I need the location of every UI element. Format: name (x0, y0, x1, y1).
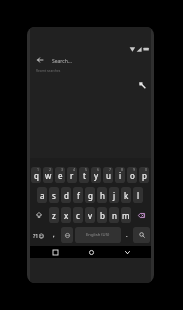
button[interactable]: . (123, 227, 131, 243)
staticText: j (113, 190, 116, 201)
button[interactable]: b (97, 207, 107, 223)
button[interactable]: z (49, 207, 59, 223)
button[interactable]: Hide keyboard (117, 246, 137, 258)
staticText: s (52, 190, 56, 201)
staticText: n (112, 210, 117, 221)
button[interactable]: Back (34, 54, 46, 66)
staticText: Search... (52, 58, 72, 65)
staticText: u (106, 170, 111, 181)
staticText: 8 (121, 167, 124, 172)
button[interactable]: Home (81, 246, 101, 258)
button[interactable]: k (121, 187, 131, 203)
staticText: a (40, 190, 45, 201)
staticText: h (100, 190, 105, 201)
staticText: p (142, 170, 147, 181)
staticText: 1 (37, 167, 40, 172)
staticText: v (88, 210, 93, 221)
button[interactable]: m (121, 207, 131, 223)
staticText: t (83, 170, 86, 181)
button[interactable]: t (79, 167, 89, 183)
staticText: 4 (73, 167, 76, 172)
button[interactable]: v (85, 207, 95, 223)
staticText: , (53, 231, 55, 239)
staticText: z (52, 210, 56, 221)
button[interactable]: English (US) (75, 227, 121, 243)
button[interactable]: q (31, 167, 41, 183)
button[interactable]: s (49, 187, 59, 203)
staticText: 5 (85, 167, 88, 172)
button[interactable]: Search (133, 227, 150, 243)
staticText: l (137, 190, 140, 201)
button[interactable]: x (61, 207, 71, 223)
button[interactable]: y (91, 167, 101, 183)
button[interactable]: Backspace (133, 207, 149, 223)
staticText: c (76, 210, 80, 221)
button[interactable]: Recent apps (45, 246, 65, 258)
staticText: 0 (145, 167, 148, 172)
staticText: m (122, 210, 130, 221)
button[interactable]: a (37, 187, 47, 203)
staticText: 9 (133, 167, 136, 172)
button[interactable]: g (85, 187, 95, 203)
staticText: r (70, 170, 74, 181)
staticText: i (119, 170, 122, 181)
button[interactable]: o (127, 167, 137, 183)
staticText: . (126, 231, 128, 239)
button[interactable]: ?1☺ (31, 227, 47, 243)
button[interactable]: Shift (31, 207, 47, 223)
staticText: b (100, 210, 105, 221)
button[interactable]: j (109, 187, 119, 203)
staticText: w (45, 170, 52, 181)
button[interactable]: h (97, 187, 107, 203)
button[interactable]: n (109, 207, 119, 223)
staticText: 2 (49, 167, 52, 172)
staticText: 3 (61, 167, 64, 172)
staticText: ?1☺ (33, 232, 45, 239)
button[interactable]: l (133, 187, 143, 203)
button[interactable]: , (49, 227, 59, 243)
staticText: q (34, 170, 39, 181)
staticText: Recent searches (36, 69, 61, 73)
button[interactable]: c (73, 207, 83, 223)
button[interactable]: e (55, 167, 65, 183)
staticText: g (88, 190, 93, 201)
button[interactable]: f (73, 187, 83, 203)
button[interactable]: Change keyboard (61, 227, 73, 243)
staticText: o (130, 170, 135, 181)
staticText: f (77, 190, 80, 201)
button[interactable]: u (103, 167, 113, 183)
button[interactable]: w (43, 167, 53, 183)
staticText: 7 (109, 167, 112, 172)
button[interactable]: d (61, 187, 71, 203)
staticText: x (64, 210, 69, 221)
staticText: d (64, 190, 69, 201)
staticText: y (94, 170, 99, 181)
button[interactable]: i (115, 167, 125, 183)
staticText: English (US) (86, 232, 110, 238)
staticText: k (124, 190, 129, 201)
staticText: 6 (97, 167, 100, 172)
button[interactable]: p (139, 167, 149, 183)
staticText: e (58, 170, 63, 181)
button[interactable]: r (67, 167, 77, 183)
